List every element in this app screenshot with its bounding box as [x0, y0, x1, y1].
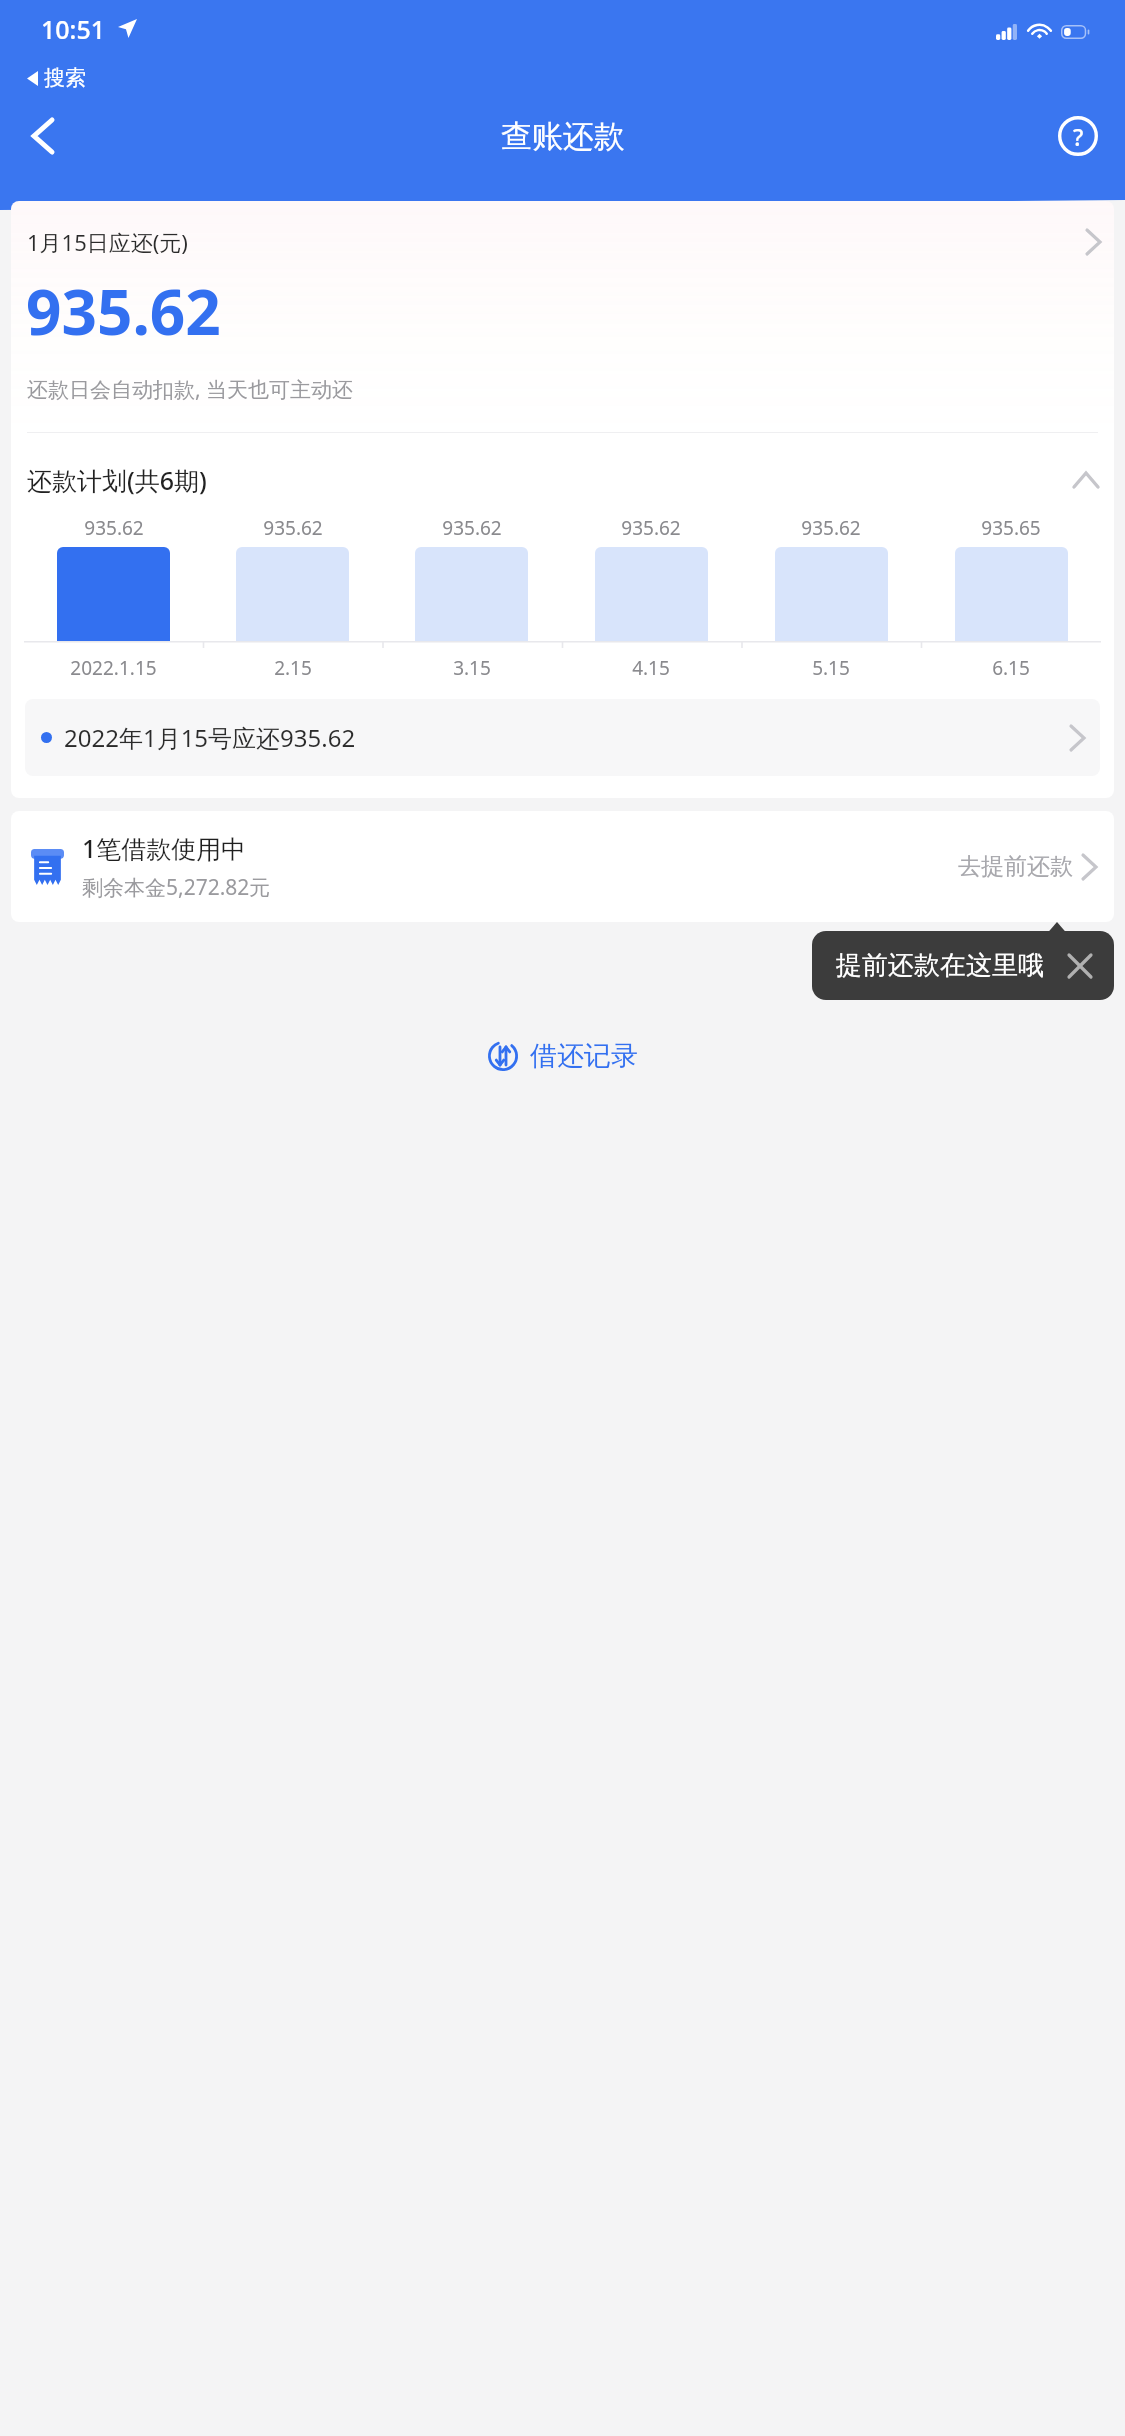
- staticText: 5.15: [812, 655, 850, 681]
- staticText: 935.62: [26, 269, 221, 353]
- button[interactable]: 1月15日应还(元): [11, 219, 1114, 263]
- staticText: 935.62: [84, 515, 144, 541]
- staticText: 935.62: [801, 515, 861, 541]
- staticText: 4.15: [632, 655, 670, 681]
- button[interactable]: 借还记录: [468, 1031, 658, 1081]
- staticText: 还款日会自动扣款, 当天也可主动还: [27, 375, 354, 404]
- staticText: 搜索: [44, 65, 86, 91]
- staticText: 提前还款在这里哦: [836, 949, 1044, 982]
- staticText: 查账还款: [501, 117, 625, 156]
- button[interactable]: 还款计划(共6期): [11, 459, 1114, 501]
- staticText: 2022年1月15号应还935.62: [64, 721, 356, 754]
- staticText: 6.15: [992, 655, 1030, 681]
- staticText: 935.62: [442, 515, 502, 541]
- staticText: 还款计划(共6期): [27, 463, 207, 497]
- staticText: 10:51: [41, 12, 106, 46]
- staticText: 1笔借款使用中: [82, 831, 247, 865]
- button[interactable]: 2022年1月15号应还935.62: [25, 699, 1100, 776]
- button[interactable]: 1笔借款使用中: [11, 811, 1114, 922]
- staticText: 去提前还款: [958, 852, 1073, 881]
- staticText: 935.62: [621, 515, 681, 541]
- staticText: 1月15日应还(元): [27, 227, 188, 257]
- button[interactable]: 帮助: [1051, 109, 1105, 163]
- button[interactable]: 提前还款在这里哦: [812, 931, 1114, 1000]
- staticText: 2022.1.15: [70, 655, 157, 681]
- button[interactable]: 返回: [16, 109, 70, 163]
- staticText: 935.65: [981, 515, 1041, 541]
- staticText: 3.15: [453, 655, 491, 681]
- staticText: 借还记录: [530, 1039, 638, 1073]
- staticText: 935.62: [263, 515, 323, 541]
- staticText: ?: [1073, 121, 1084, 152]
- other: 关闭: [1066, 952, 1094, 980]
- staticText: 2.15: [274, 655, 312, 681]
- staticText: 剩余本金5,272.82元: [82, 873, 271, 902]
